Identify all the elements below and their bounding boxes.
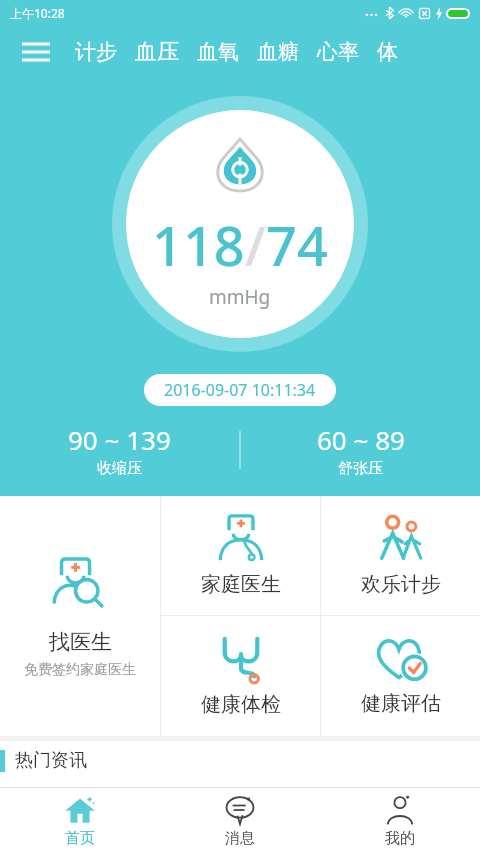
staticText: 健康评估 [361,691,441,716]
button[interactable]: 我的 [320,788,480,854]
staticText: 体 [377,39,398,65]
button[interactable]: 血压 [135,38,179,66]
button[interactable]: 计步 [75,39,117,65]
staticText: 消息 [225,829,255,848]
button[interactable]: 血氧 [197,39,239,65]
button[interactable]: 健康评估 [321,616,480,736]
staticText: 2016-09-07 10:11:34 [164,379,316,401]
button[interactable]: 欢乐计步 [321,496,480,615]
button[interactable]: 心率 [317,39,359,65]
staticText: 收缩压 [97,459,142,478]
button[interactable]: Menu [14,30,58,74]
staticText: 欢乐计步 [361,572,441,597]
button[interactable]: 健康体检 [161,616,320,736]
staticText: 上午10:28 [10,5,65,21]
staticText: 60 ~ 89 [317,422,405,457]
staticText: 血糖 [257,39,299,65]
staticText: 我的 [385,829,415,848]
button[interactable]: 首页 [0,788,160,854]
staticText: / [245,208,266,282]
staticText: 找医生 [49,629,112,655]
staticText: 舒张压 [338,459,383,478]
staticText: 心率 [317,39,359,65]
staticText: 健康体检 [201,692,281,717]
button[interactable]: 2016-09-07 10:11:34 [144,374,336,406]
staticText: 血压 [135,38,179,66]
button[interactable]: 消息 [160,788,320,854]
staticText: mmHg [209,284,271,310]
staticText: 118 [152,208,245,282]
staticText: 免费签约家庭医生 [24,661,136,679]
button[interactable]: 找医生 [0,496,160,736]
button[interactable]: 体 [377,39,398,65]
button[interactable]: 家庭医生 [161,496,320,615]
staticText: 热门资讯 [15,749,87,772]
staticText: 首页 [65,829,95,848]
staticText: 90 ~ 139 [68,422,171,457]
staticText: 家庭医生 [201,572,281,597]
staticText: 血氧 [197,39,239,65]
button[interactable]: 血糖 [257,39,299,65]
staticText: 74 [266,208,328,282]
staticText: 计步 [75,39,117,65]
